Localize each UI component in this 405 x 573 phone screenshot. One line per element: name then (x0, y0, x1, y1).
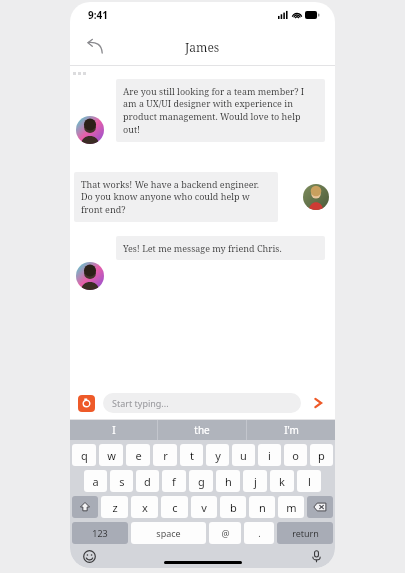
button[interactable]: j (243, 470, 267, 492)
staticText: x (142, 500, 148, 515)
staticText: r (163, 448, 168, 463)
button[interactable]: the (158, 420, 246, 440)
staticText: g (198, 474, 205, 489)
button[interactable]: Emoji (80, 547, 98, 565)
button[interactable]: I'm (247, 420, 335, 440)
staticText: p (318, 448, 325, 463)
button[interactable]: Shift (72, 496, 98, 518)
button[interactable]: h (216, 470, 240, 492)
button[interactable]: x (131, 496, 158, 518)
button[interactable]: Back (80, 32, 110, 62)
staticText: Are you still looking for a team member?… (123, 85, 318, 136)
button[interactable]: s (110, 470, 133, 492)
button[interactable]: z (101, 496, 128, 518)
button[interactable]: Backspace (307, 496, 333, 518)
button[interactable]: p (310, 444, 333, 466)
staticText: e (135, 448, 142, 463)
button[interactable]: g (189, 470, 213, 492)
staticText: space (156, 527, 181, 539)
staticText: 123 (92, 527, 108, 539)
button[interactable]: n (249, 496, 275, 518)
staticText: z (112, 500, 118, 515)
staticText: n (259, 500, 266, 515)
button[interactable]: I (70, 420, 157, 440)
staticText: b (230, 500, 237, 515)
staticText: h (225, 474, 232, 489)
staticText: y (215, 448, 221, 463)
button[interactable]: m (278, 496, 304, 518)
button[interactable]: Contact avatar (303, 184, 329, 210)
button[interactable]: That works! We have a backend engineer. … (74, 172, 278, 222)
staticText: s (119, 474, 125, 489)
staticText: I'm (284, 423, 299, 437)
button[interactable]: c (161, 496, 188, 518)
staticText: o (292, 448, 299, 463)
button[interactable]: Send (309, 394, 327, 412)
staticText: return (292, 527, 319, 539)
staticText: the (194, 423, 210, 437)
staticText: That works! We have a backend engineer. … (81, 178, 271, 216)
staticText: I (112, 423, 116, 437)
staticText: a (92, 474, 99, 489)
button[interactable]: q (72, 444, 96, 466)
button[interactable]: James avatar (76, 262, 104, 290)
button[interactable]: return (277, 522, 333, 544)
staticText: c (172, 500, 178, 515)
button[interactable]: o (284, 444, 307, 466)
button[interactable]: Start typing... (103, 393, 301, 413)
button[interactable]: Voice input (307, 547, 325, 565)
button[interactable]: u (232, 444, 255, 466)
button[interactable]: y (206, 444, 229, 466)
staticText: @ (221, 527, 230, 539)
button[interactable]: space (131, 522, 206, 544)
staticText: u (240, 448, 247, 463)
staticText: f (172, 474, 176, 489)
staticText: q (81, 448, 88, 463)
button[interactable]: k (270, 470, 294, 492)
button[interactable]: i (258, 444, 281, 466)
button[interactable]: l (297, 470, 321, 492)
button[interactable]: James avatar (76, 116, 104, 144)
button[interactable]: v (191, 496, 217, 518)
staticText: 9:41 (88, 8, 108, 22)
button[interactable]: @ (209, 522, 241, 544)
button[interactable]: Camera (78, 395, 95, 412)
staticText: d (144, 474, 151, 489)
staticText: Yes! Let me message my friend Chris. (123, 242, 282, 254)
button[interactable]: f (162, 470, 186, 492)
button[interactable]: e (126, 444, 150, 466)
staticText: t (190, 448, 194, 463)
staticText: j (254, 474, 257, 489)
button[interactable]: b (220, 496, 246, 518)
button[interactable]: 123 (72, 522, 128, 544)
staticText: v (201, 500, 207, 515)
staticText: Start typing... (112, 397, 169, 409)
staticText: i (268, 448, 271, 463)
staticText: m (286, 500, 297, 515)
staticText: l (308, 474, 311, 489)
button[interactable]: Yes! Let me message my friend Chris. (116, 236, 325, 260)
button[interactable]: a (84, 470, 107, 492)
button[interactable]: t (180, 444, 203, 466)
staticText: w (107, 448, 116, 463)
staticText: . (258, 527, 261, 539)
button[interactable]: w (99, 444, 123, 466)
button[interactable]: d (136, 470, 159, 492)
button[interactable]: Are you still looking for a team member?… (116, 79, 325, 142)
staticText: James (185, 39, 220, 55)
staticText: k (279, 474, 285, 489)
button[interactable]: . (244, 522, 274, 544)
button[interactable]: r (153, 444, 177, 466)
